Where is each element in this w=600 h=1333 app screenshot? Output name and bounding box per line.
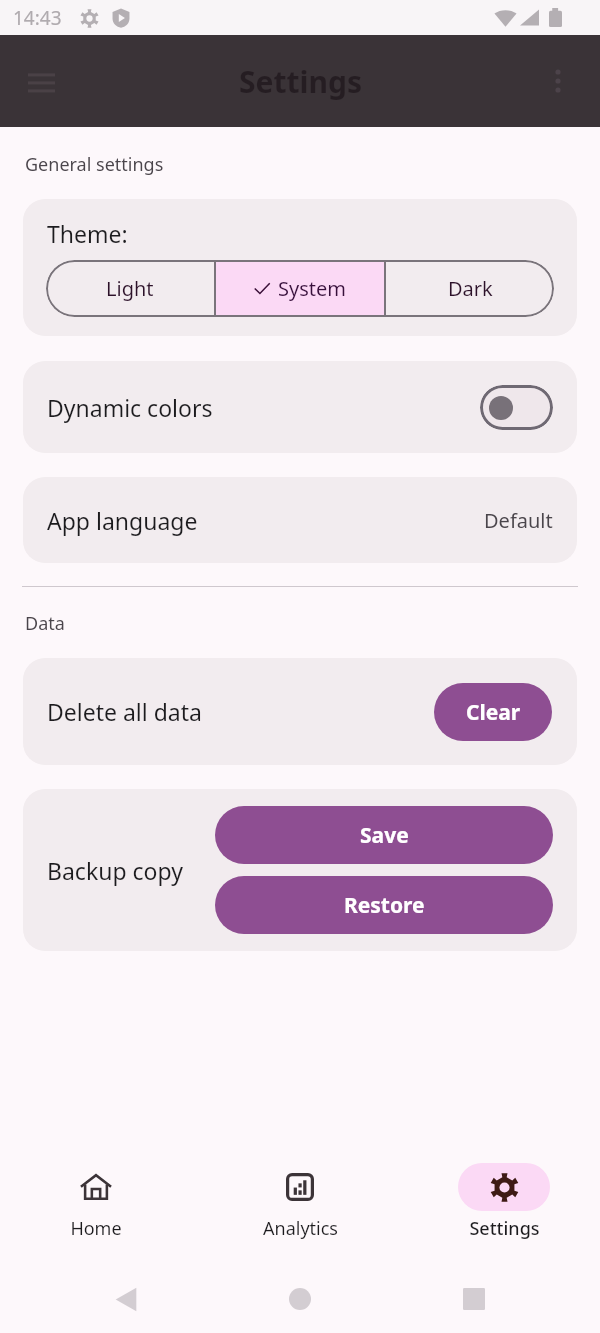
button[interactable]: Dark [386, 260, 554, 317]
staticText: 14:43 [13, 5, 62, 31]
staticText: General settings [25, 152, 164, 177]
button[interactable]: Recent apps [462, 1271, 486, 1327]
button[interactable]: Back [114, 1271, 138, 1327]
button[interactable]: Settings [458, 1149, 550, 1265]
button[interactable]: Analytics [254, 1149, 346, 1265]
staticText: App language [47, 505, 198, 536]
staticText: Home [70, 1216, 122, 1241]
staticText: Delete all data [47, 696, 202, 727]
staticText: Backup copy [47, 855, 183, 886]
staticText: Settings [239, 61, 362, 102]
staticText: Save [360, 821, 409, 850]
button[interactable]: Clear [434, 683, 552, 741]
button[interactable]: Dynamic colors [23, 361, 577, 453]
staticText: Dynamic colors [47, 392, 213, 423]
staticText: Default [484, 507, 553, 534]
staticText: Data [25, 611, 65, 636]
staticText: Restore [344, 891, 425, 920]
button[interactable]: Open navigation menu [17, 57, 65, 105]
button[interactable]: Save [215, 806, 553, 864]
staticText: Light [106, 275, 154, 302]
button[interactable]: Home [288, 1271, 312, 1327]
button[interactable]: Light [46, 260, 214, 317]
staticText: Theme: [47, 218, 128, 249]
button[interactable]: Restore [215, 876, 553, 934]
staticText: Dark [448, 275, 493, 302]
staticText: Settings [469, 1216, 540, 1241]
button[interactable]: Home [50, 1149, 142, 1265]
staticText: System [278, 275, 346, 302]
staticText: Analytics [263, 1216, 338, 1241]
button[interactable]: System [216, 260, 384, 317]
staticText: Clear [466, 698, 521, 727]
button[interactable]: App language [23, 477, 577, 563]
button[interactable]: Dynamic colors toggle [480, 385, 553, 430]
